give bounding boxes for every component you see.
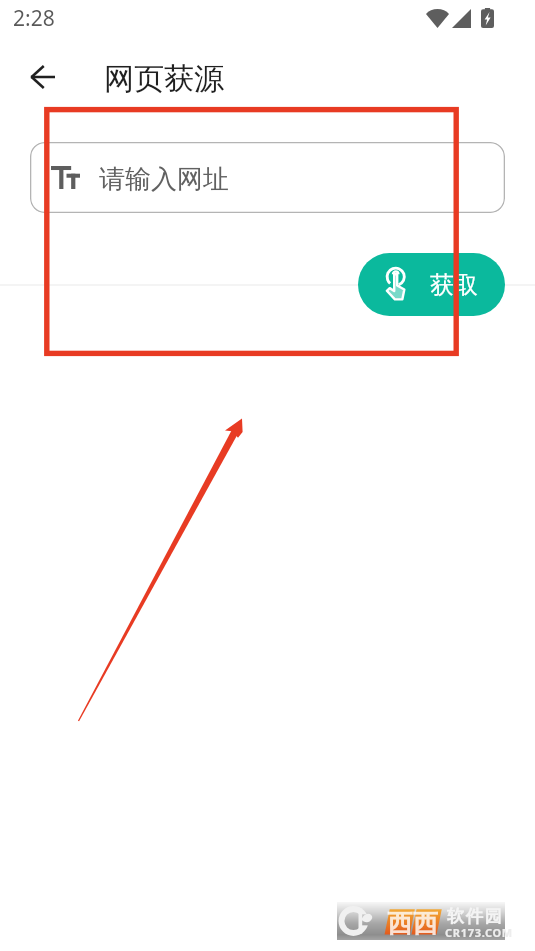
staticText: 请输入网址 [99, 163, 229, 196]
button[interactable]: 获取 [358, 253, 505, 316]
staticText: 网页获源 [104, 60, 224, 98]
button[interactable]: 请输入网址 [30, 142, 505, 213]
staticText: 2:28 [13, 4, 55, 33]
staticText: 软件园 [447, 906, 504, 927]
staticText: 获取 [430, 270, 478, 300]
staticText: 西西 [387, 908, 438, 939]
button[interactable]: Back [18, 53, 66, 101]
staticText: CR173.COM [445, 925, 513, 940]
